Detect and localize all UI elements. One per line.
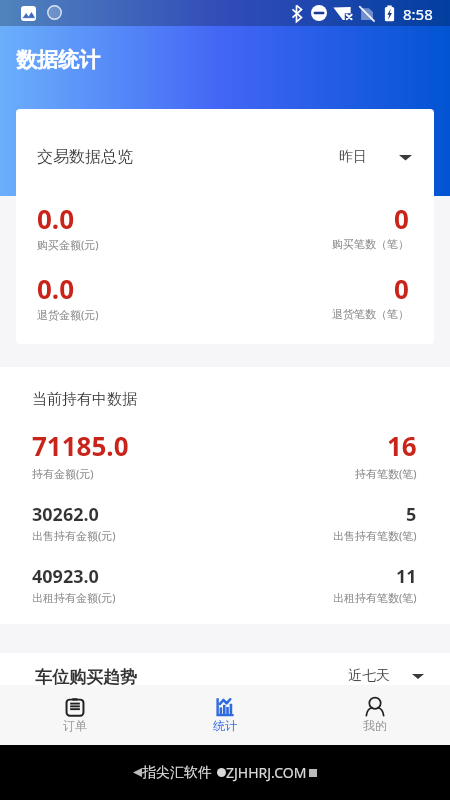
staticText: 我的 bbox=[363, 718, 387, 733]
staticText: ZJHHRJ.COM bbox=[226, 763, 307, 782]
staticText: 8:58 bbox=[403, 4, 433, 24]
button[interactable]: 统计 bbox=[150, 685, 300, 745]
staticText: 出售持有金额(元) bbox=[32, 528, 116, 543]
staticText: 当前持有中数据 bbox=[32, 390, 137, 409]
staticText: 16 bbox=[387, 428, 417, 463]
staticText: 0.0 bbox=[37, 271, 75, 306]
staticText: 退货笔数（笔） bbox=[332, 307, 409, 321]
staticText: 71185.0 bbox=[32, 428, 129, 463]
button[interactable]: 我的 bbox=[300, 685, 450, 745]
staticText: 近七天 bbox=[348, 667, 390, 685]
staticText: 出租持有笔数(笔) bbox=[333, 590, 417, 605]
staticText: 车位购买趋势 bbox=[35, 667, 137, 685]
staticText: 退货金额(元) bbox=[37, 307, 99, 322]
staticText: 数据统计 bbox=[16, 47, 100, 73]
button[interactable]: 车位购买趋势 bbox=[35, 667, 424, 685]
staticText: 统计 bbox=[213, 718, 237, 733]
staticText: 0 bbox=[394, 271, 409, 306]
staticText: 30262.0 bbox=[32, 502, 99, 527]
staticText: 40923.0 bbox=[32, 564, 99, 589]
staticText: 交易数据总览 bbox=[37, 147, 133, 167]
staticText: 5 bbox=[406, 502, 417, 527]
staticText: 订单 bbox=[63, 718, 87, 733]
staticText: 出售持有笔数(笔) bbox=[333, 528, 417, 543]
staticText: 购买笔数（笔） bbox=[332, 237, 409, 251]
staticText: 指尖汇软件 bbox=[142, 764, 212, 782]
staticText: 0.0 bbox=[37, 201, 75, 236]
staticText: 持有笔数(笔) bbox=[355, 466, 417, 481]
button[interactable]: 交易数据总览 bbox=[37, 147, 424, 167]
staticText: 昨日 bbox=[339, 148, 367, 166]
staticText: 0 bbox=[394, 201, 409, 236]
staticText: 购买金额(元) bbox=[37, 237, 99, 252]
button[interactable]: 订单 bbox=[0, 685, 150, 745]
staticText: 持有金额(元) bbox=[32, 466, 94, 481]
staticText: 11 bbox=[396, 564, 417, 589]
staticText: 出租持有金额(元) bbox=[32, 590, 116, 605]
